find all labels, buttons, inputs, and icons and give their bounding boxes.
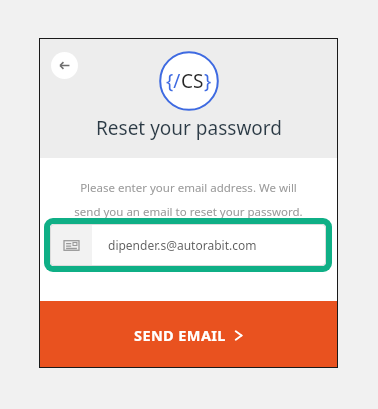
button[interactable]: dipender.s@autorabit.com [50, 224, 326, 266]
staticText: {/ [166, 68, 181, 94]
staticText: CS [181, 68, 204, 94]
button[interactable]: SEND EMAIL [39, 301, 338, 368]
staticText: Please enter your email address. We will [80, 180, 297, 196]
staticText: send you an email to reset your password… [74, 204, 303, 220]
staticText: } [204, 68, 212, 94]
button[interactable]: Back [51, 52, 78, 79]
staticText: Reset your password [96, 115, 282, 141]
staticText: dipender.s@autorabit.com [108, 237, 257, 253]
staticText: SEND EMAIL [134, 325, 226, 345]
